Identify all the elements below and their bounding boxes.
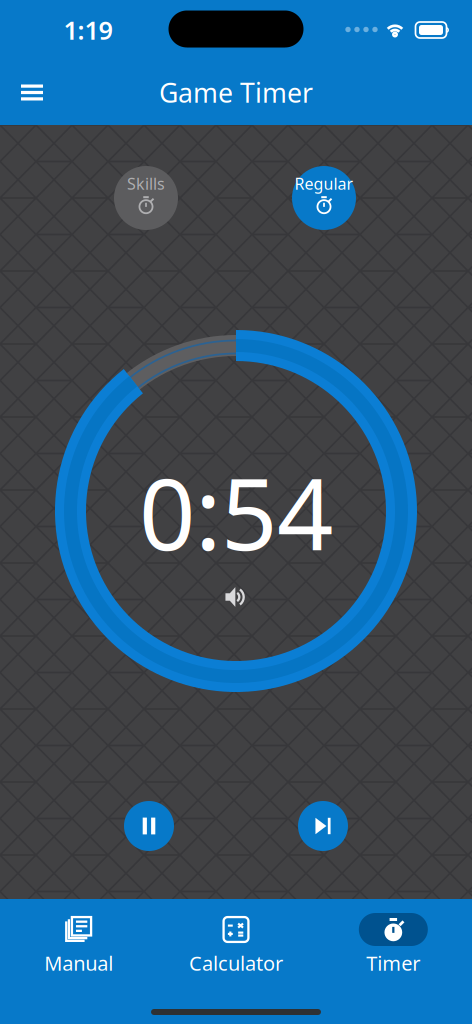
staticText: Game Timer: [159, 75, 313, 110]
button[interactable]: Skills: [114, 166, 178, 230]
staticText: Calculator: [189, 950, 283, 976]
button[interactable]: Menu: [0, 72, 64, 112]
staticText: Manual: [44, 950, 113, 976]
button[interactable]: Manual: [0, 913, 157, 973]
staticText: 1:19: [63, 13, 112, 47]
button[interactable]: Pause: [124, 801, 174, 851]
button[interactable]: Calculator: [157, 913, 315, 973]
staticText: 0:54: [139, 446, 333, 577]
button[interactable]: Skip to next period: [298, 801, 348, 851]
staticText: Skills: [127, 173, 165, 194]
staticText: Regular: [294, 173, 353, 194]
staticText: Timer: [366, 950, 420, 976]
button[interactable]: Regular: [292, 166, 356, 230]
button[interactable]: Timer: [315, 913, 472, 973]
